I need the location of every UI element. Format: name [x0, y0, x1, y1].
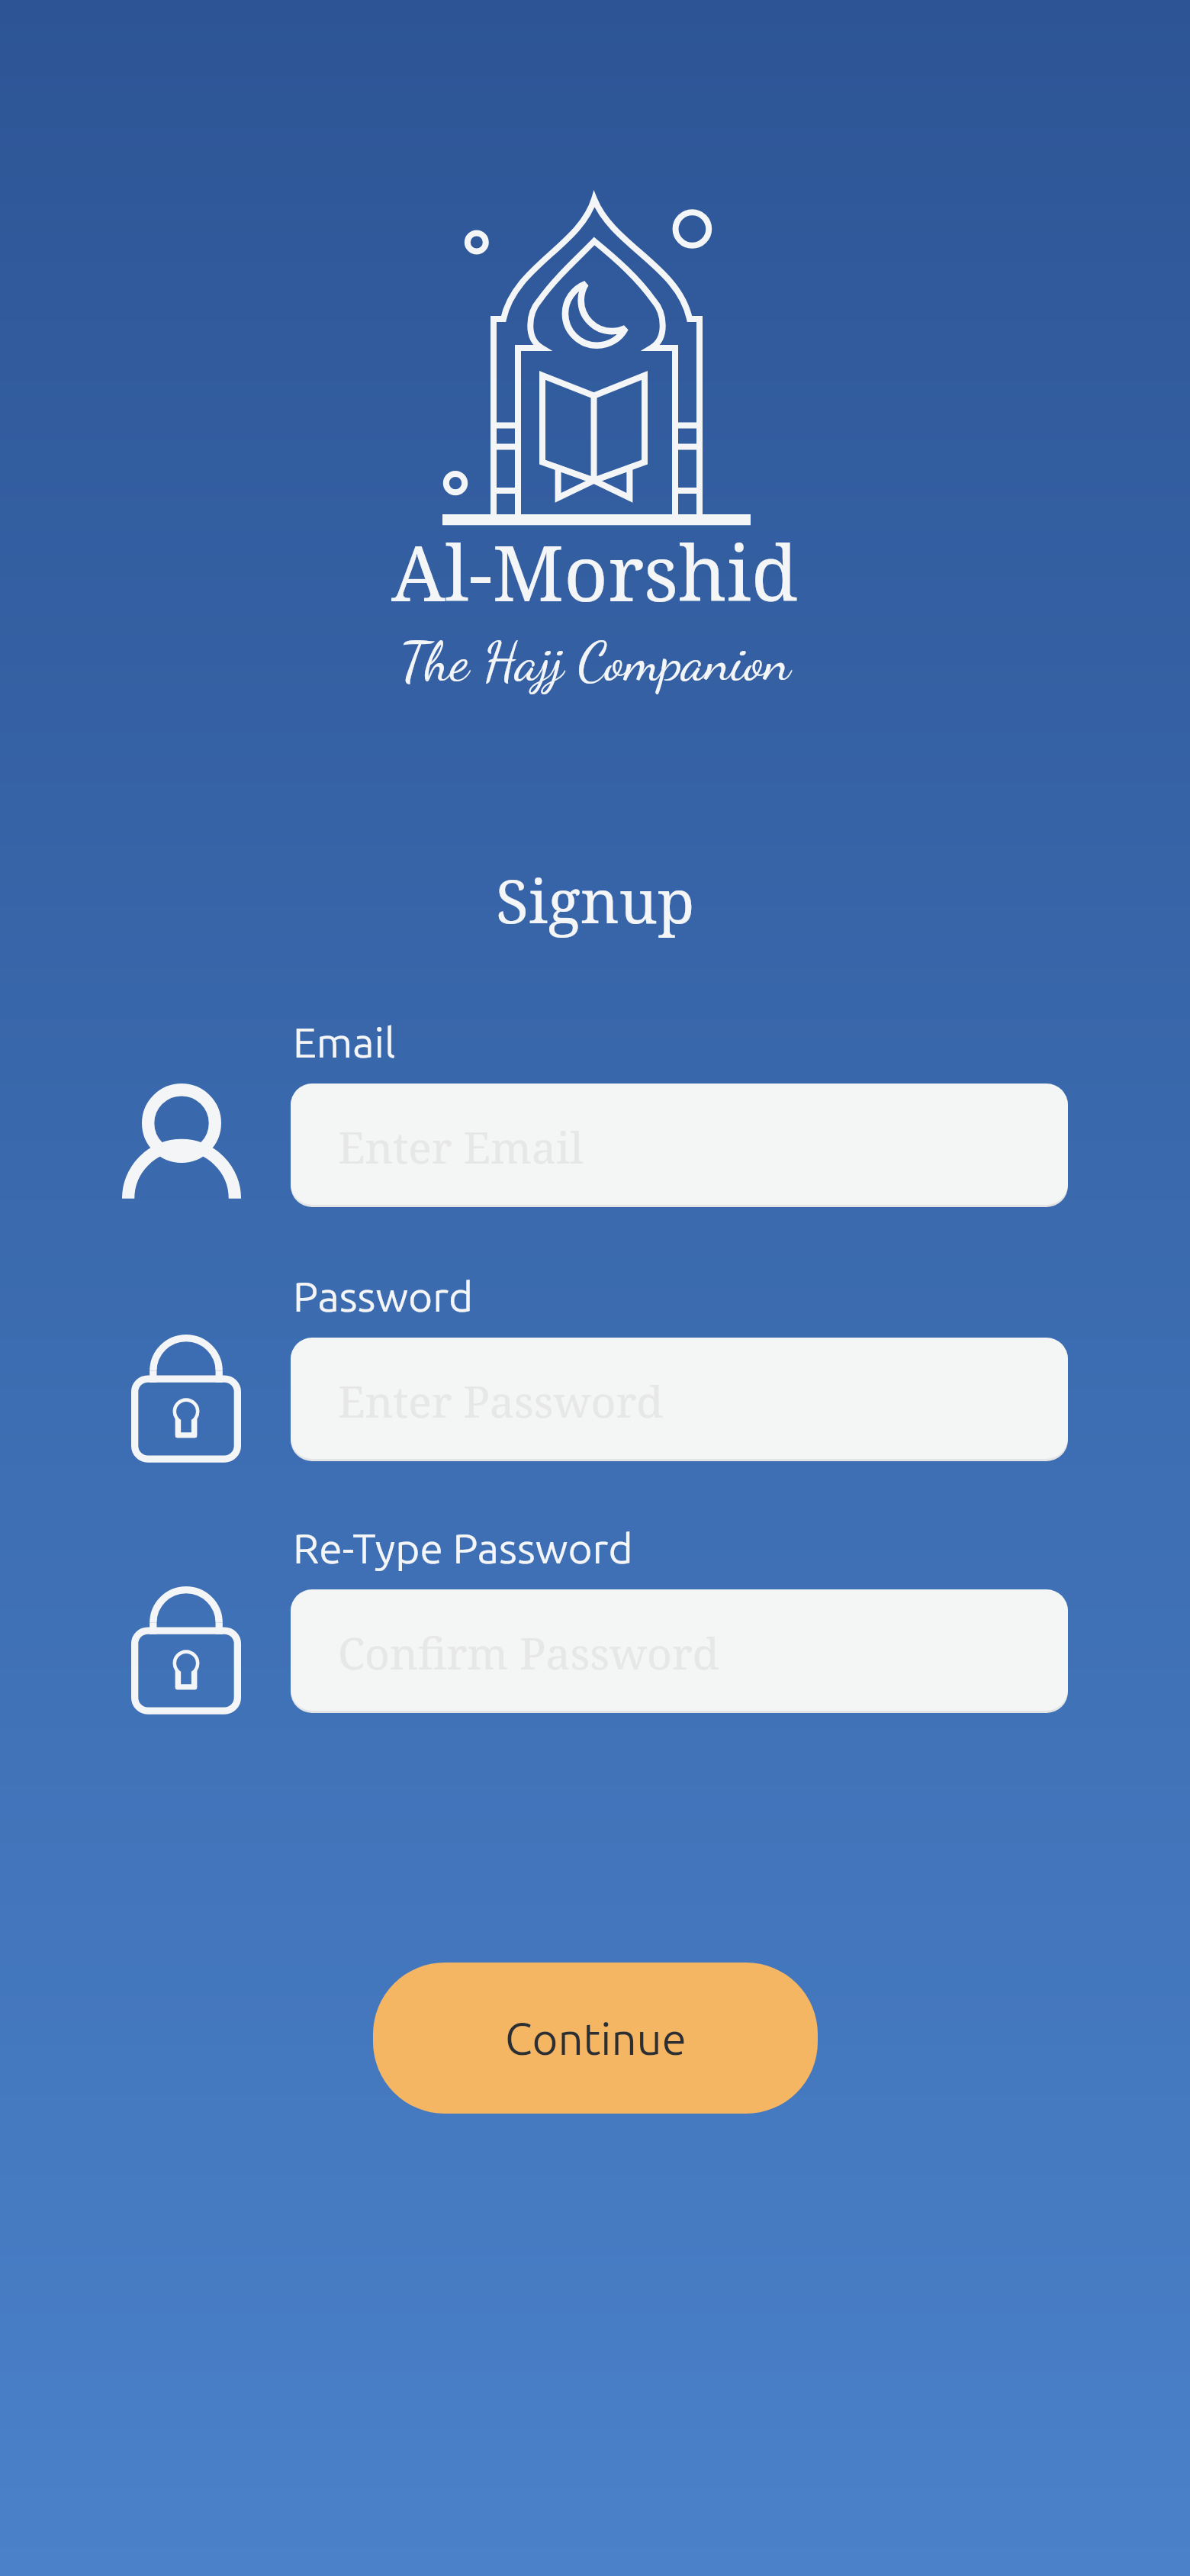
other: Password field: [131, 1586, 241, 1715]
staticText: Re-Type Password: [293, 1525, 633, 1572]
staticText: Password: [293, 1273, 474, 1320]
staticText: Signup: [496, 859, 695, 942]
button[interactable]: Confirm Password: [291, 1589, 1068, 1711]
button[interactable]: Continue: [373, 1963, 818, 2114]
staticText: Enter Password: [338, 1371, 664, 1431]
staticText: Confirm Password: [338, 1623, 719, 1682]
staticText: Enter Email: [338, 1117, 584, 1177]
staticText: Email: [293, 1019, 396, 1066]
staticText: The Hajj Companion: [400, 629, 791, 694]
other: Password field: [131, 1335, 241, 1463]
button[interactable]: Enter Email: [291, 1084, 1068, 1205]
staticText: Continue: [505, 2014, 687, 2063]
other: Email field: [122, 1084, 241, 1205]
staticText: Al-Morshid: [391, 520, 799, 623]
button[interactable]: Enter Password: [291, 1338, 1068, 1459]
other: Al-Morshid logo: [444, 188, 749, 520]
